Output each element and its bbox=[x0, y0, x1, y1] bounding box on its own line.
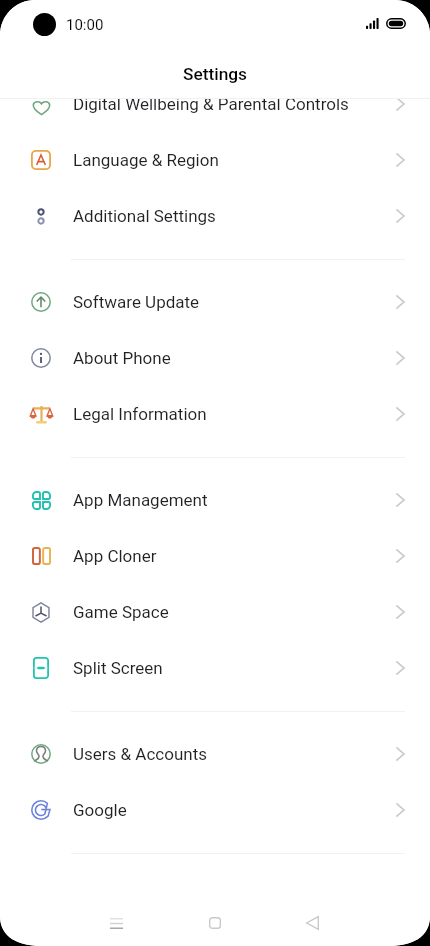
staticText: Users & Accounts bbox=[73, 744, 396, 764]
staticText: Digital Wellbeing & Parental Controls bbox=[73, 99, 396, 114]
staticText: Additional Settings bbox=[73, 206, 396, 226]
staticText: Split Screen bbox=[73, 658, 396, 678]
button[interactable]: Digital Wellbeing & Parental Controls bbox=[0, 99, 430, 132]
staticText: App Management bbox=[73, 490, 396, 510]
staticText: About Phone bbox=[73, 348, 396, 368]
button[interactable]: Users & Accounts bbox=[0, 726, 430, 782]
button[interactable]: Home bbox=[189, 897, 241, 946]
button[interactable]: Game Space bbox=[0, 584, 430, 640]
button[interactable]: App Management bbox=[0, 472, 430, 528]
button[interactable]: Software Update bbox=[0, 274, 430, 330]
button[interactable]: Language & Region bbox=[0, 132, 430, 188]
button[interactable]: About Phone bbox=[0, 330, 430, 386]
button[interactable]: Recents bbox=[90, 897, 142, 946]
staticText: 10:00 bbox=[66, 16, 104, 34]
button[interactable]: Additional Settings bbox=[0, 188, 430, 244]
staticText: Language & Region bbox=[73, 150, 396, 170]
staticText: Settings bbox=[183, 64, 248, 84]
button[interactable]: App Cloner bbox=[0, 528, 430, 584]
staticText: Software Update bbox=[73, 292, 396, 312]
button[interactable]: Back bbox=[286, 897, 338, 946]
staticText: Legal Information bbox=[73, 404, 396, 424]
button[interactable]: Legal Information bbox=[0, 386, 430, 442]
staticText: Game Space bbox=[73, 602, 396, 622]
button[interactable]: Google bbox=[0, 782, 430, 838]
staticText: Google bbox=[73, 800, 396, 820]
button[interactable]: Split Screen bbox=[0, 640, 430, 696]
staticText: App Cloner bbox=[73, 546, 396, 566]
